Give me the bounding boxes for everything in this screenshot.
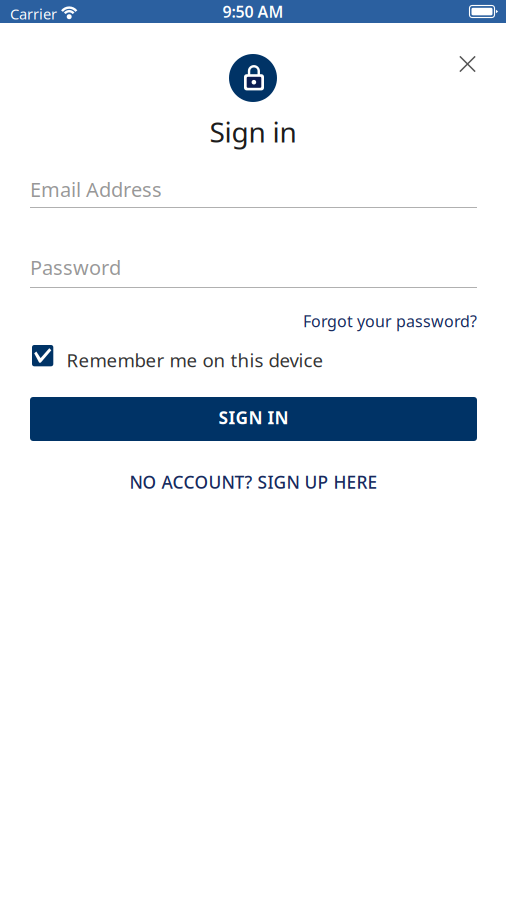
- staticText: Email Address: [30, 176, 162, 203]
- staticText: NO ACCOUNT? SIGN UP HERE: [129, 470, 377, 493]
- button[interactable]: Remember me on this device: [32, 345, 294, 368]
- button[interactable]: Forgot your password?: [30, 311, 477, 331]
- staticText: Forgot your password?: [303, 310, 477, 332]
- staticText: SIGN IN: [218, 406, 288, 429]
- staticText: Remember me on this device: [67, 347, 324, 372]
- staticText: 9:50 AM: [222, 1, 283, 22]
- button[interactable]: SIGN IN: [30, 397, 477, 441]
- button[interactable]: NO ACCOUNT? SIGN UP HERE: [30, 470, 477, 494]
- staticText: Sign in: [209, 113, 296, 150]
- button[interactable]: Close: [444, 42, 490, 86]
- staticText: Carrier: [10, 4, 57, 23]
- staticText: Password: [30, 254, 121, 281]
